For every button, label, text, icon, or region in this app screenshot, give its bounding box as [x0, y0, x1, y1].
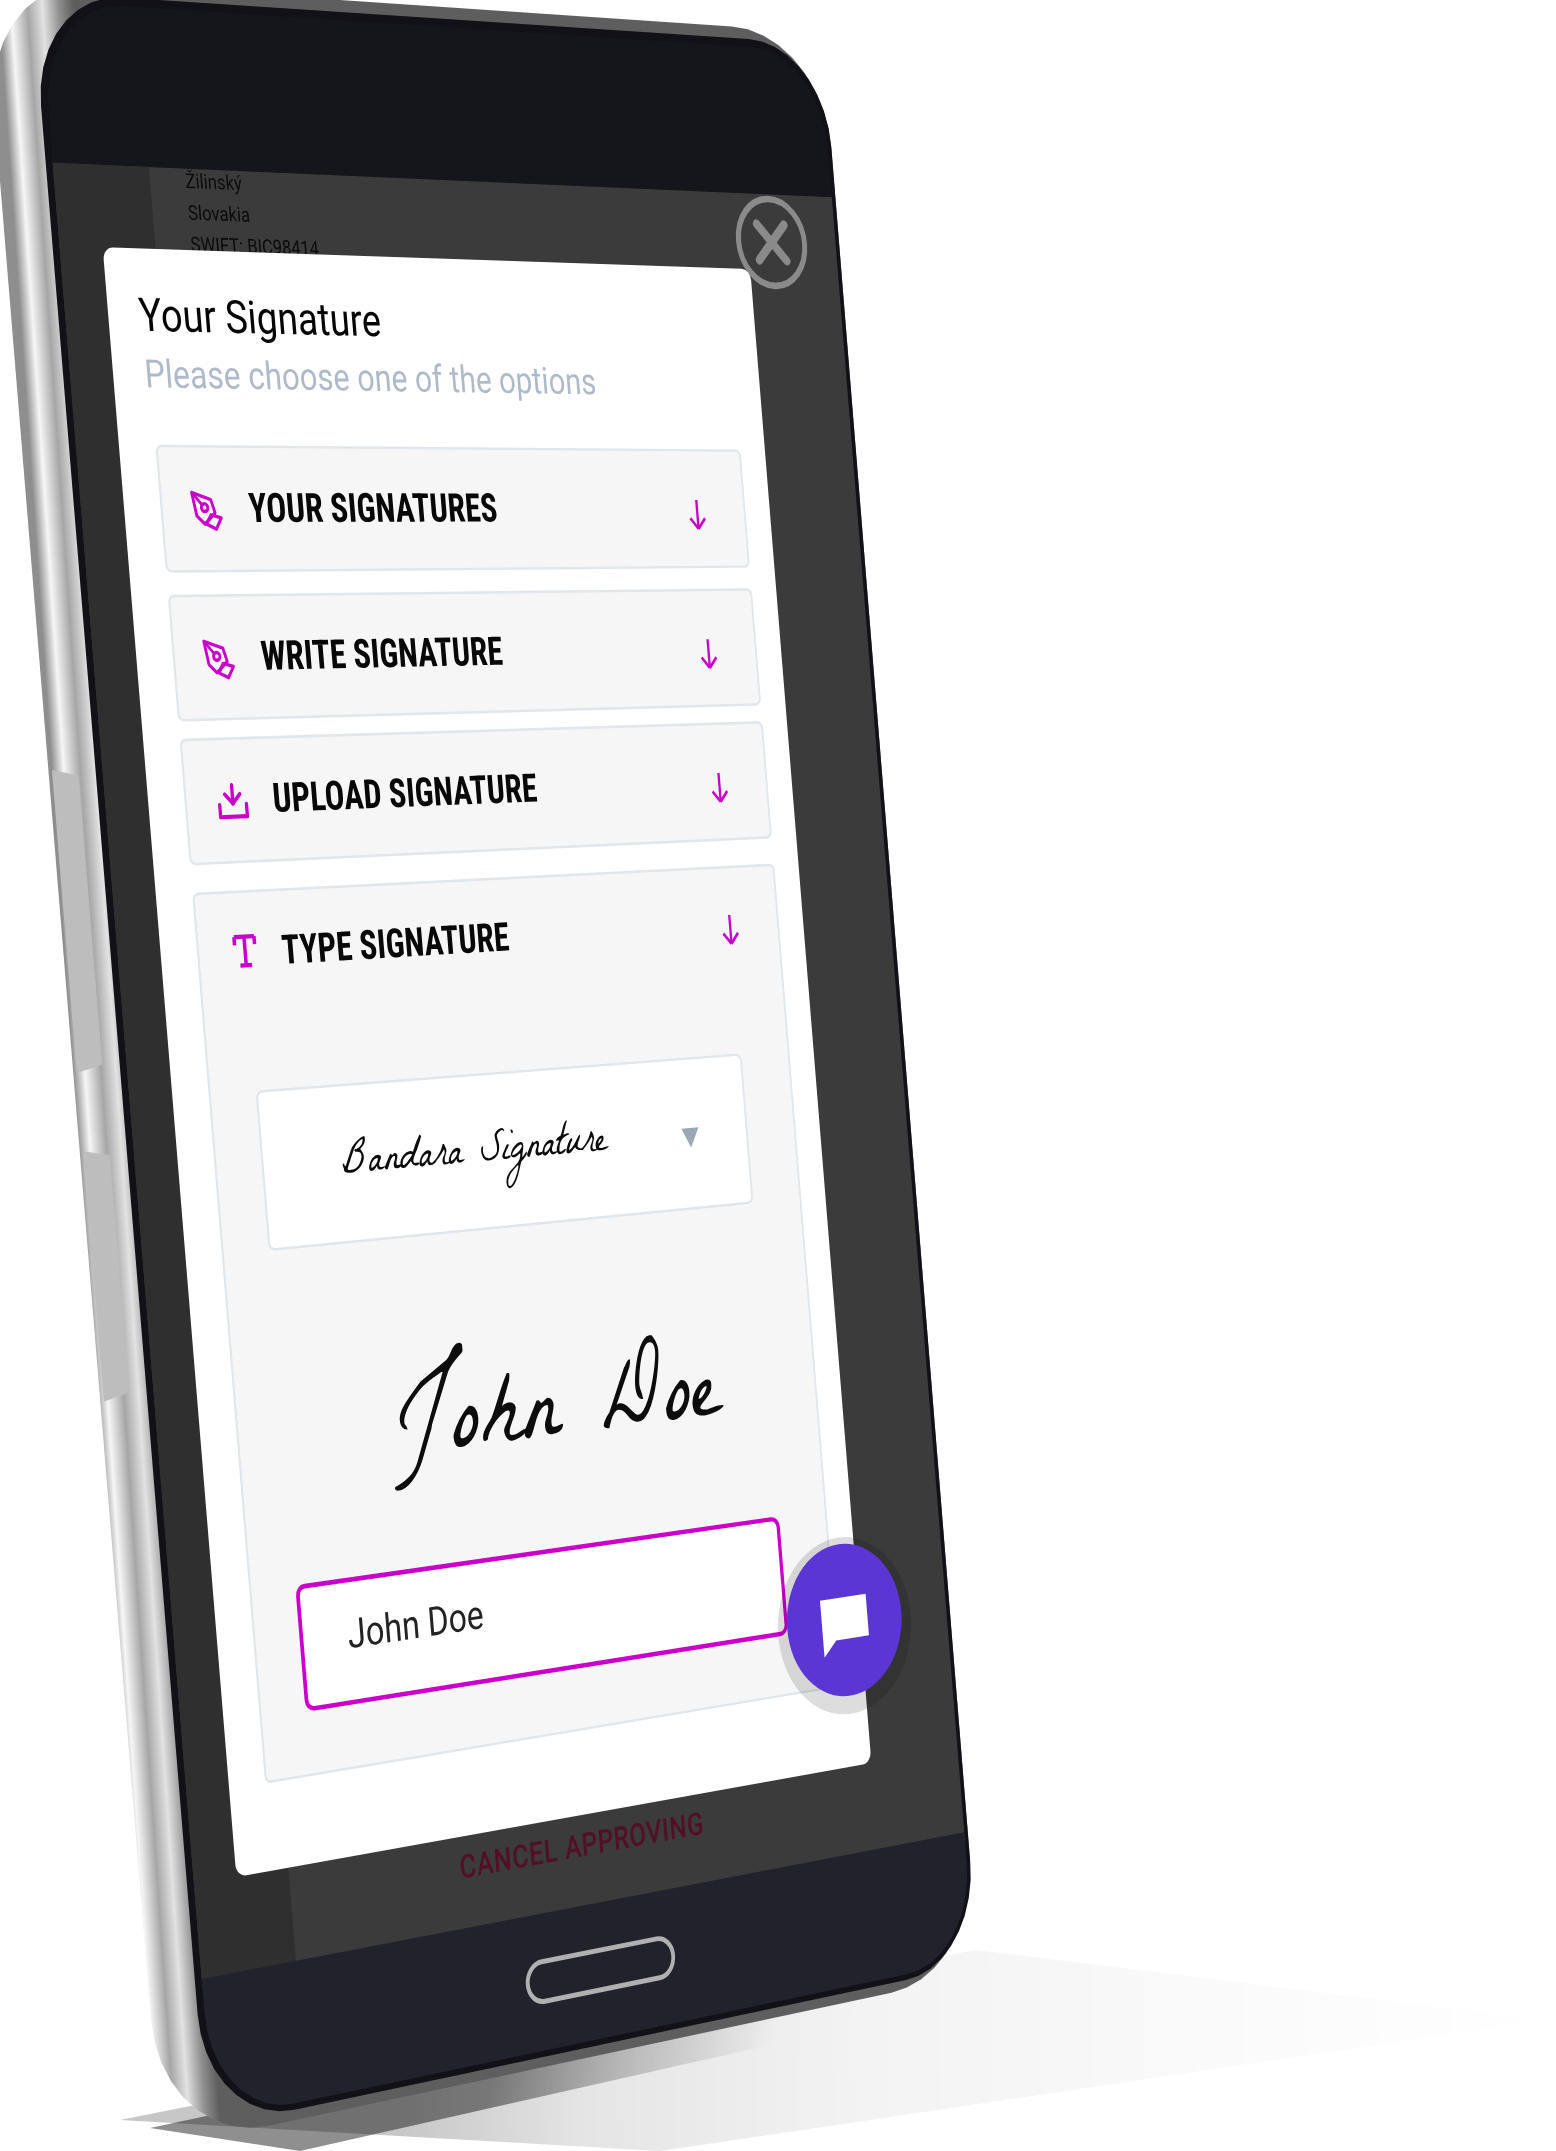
button	[0, 0, 1556, 2151]
